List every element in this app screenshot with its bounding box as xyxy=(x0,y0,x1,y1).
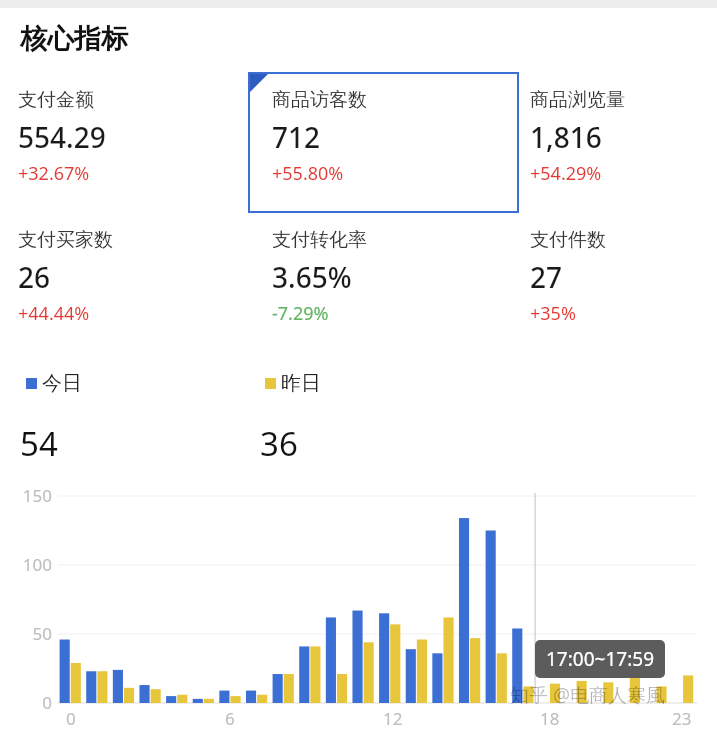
button[interactable]: 支付买家数 xyxy=(18,228,113,326)
staticText: 支付买家数 xyxy=(18,228,113,252)
other: Tooltip 17:00~17:59 xyxy=(546,646,654,672)
staticText: 0 xyxy=(66,707,76,730)
staticText: +35% xyxy=(530,301,576,326)
button[interactable]: 昨日 xyxy=(265,371,321,396)
staticText: -7.29% xyxy=(272,301,329,326)
button[interactable]: 支付转化率 xyxy=(272,228,367,326)
button[interactable]: 支付金额 xyxy=(18,88,106,186)
staticText: +55.80% xyxy=(272,161,344,186)
staticText: 554.29 xyxy=(18,118,106,156)
staticText: 昨日 xyxy=(281,371,321,396)
staticText: 知乎 @电商人寒風 xyxy=(510,682,666,708)
staticText: 0 xyxy=(42,691,52,714)
staticText: 150 xyxy=(22,484,52,507)
staticText: 712 xyxy=(272,118,321,156)
staticText: 商品浏览量 xyxy=(530,88,625,112)
staticText: 支付转化率 xyxy=(272,228,367,252)
button[interactable]: 今日 xyxy=(26,371,82,396)
staticText: 27 xyxy=(530,258,563,296)
staticText: 支付金额 xyxy=(18,88,94,112)
button[interactable]: 支付件数 xyxy=(530,228,606,326)
staticText: 50 xyxy=(32,622,52,645)
staticText: 3.65% xyxy=(272,258,352,296)
staticText: 23 xyxy=(672,707,692,730)
staticText: 12 xyxy=(383,707,403,730)
staticText: +54.29% xyxy=(530,161,602,186)
staticText: 支付件数 xyxy=(530,228,606,252)
staticText: 26 xyxy=(18,258,51,296)
button[interactable]: 商品访客数 xyxy=(272,88,367,186)
staticText: 18 xyxy=(540,707,560,730)
staticText: 1,816 xyxy=(530,118,602,156)
staticText: 商品访客数 xyxy=(272,88,367,112)
staticText: 54 xyxy=(20,421,58,466)
staticText: 36 xyxy=(260,421,298,466)
button[interactable]: 商品浏览量 xyxy=(530,88,625,186)
staticText: 今日 xyxy=(42,371,82,396)
staticText: 6 xyxy=(225,707,235,730)
staticText: 核心指标 xyxy=(20,22,128,56)
staticText: +44.44% xyxy=(18,301,90,326)
staticText: 100 xyxy=(22,553,52,576)
button[interactable] xyxy=(248,72,519,213)
staticText: 17:00~17:59 xyxy=(546,646,654,672)
staticText: +32.67% xyxy=(18,161,90,186)
